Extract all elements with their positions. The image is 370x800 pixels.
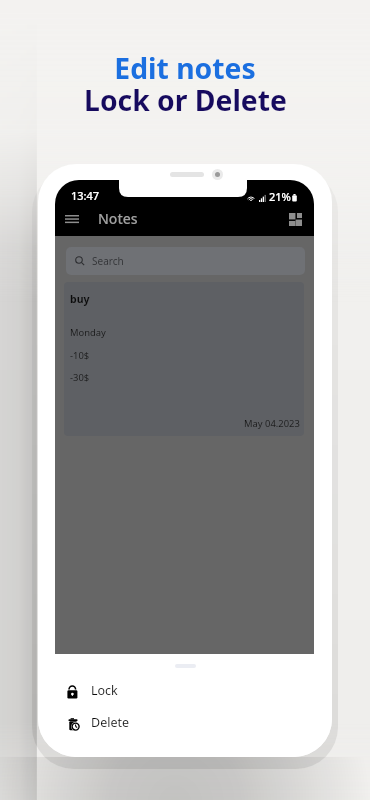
staticText: Lock or Delete (84, 81, 287, 120)
staticText: Notes (98, 209, 138, 228)
staticText: -30$ (70, 371, 90, 384)
staticText: Monday (70, 326, 106, 339)
staticText: 13:47 (71, 188, 100, 203)
button[interactable]: buy (64, 282, 304, 436)
staticText: Search (92, 254, 124, 268)
button[interactable]: Delete (55, 706, 315, 738)
staticText: Lock (91, 682, 118, 699)
staticText: May 04.2023 (244, 417, 300, 430)
staticText: -10$ (70, 349, 90, 362)
button[interactable]: Layout (285, 209, 305, 229)
staticText: Delete (91, 714, 130, 731)
button[interactable]: Menu (62, 209, 82, 229)
staticText: buy (70, 292, 90, 306)
button[interactable]: Lock (55, 674, 315, 706)
button[interactable]: Search (66, 247, 305, 275)
staticText: 21% (269, 189, 291, 204)
staticText: Edit notes (114, 49, 256, 88)
